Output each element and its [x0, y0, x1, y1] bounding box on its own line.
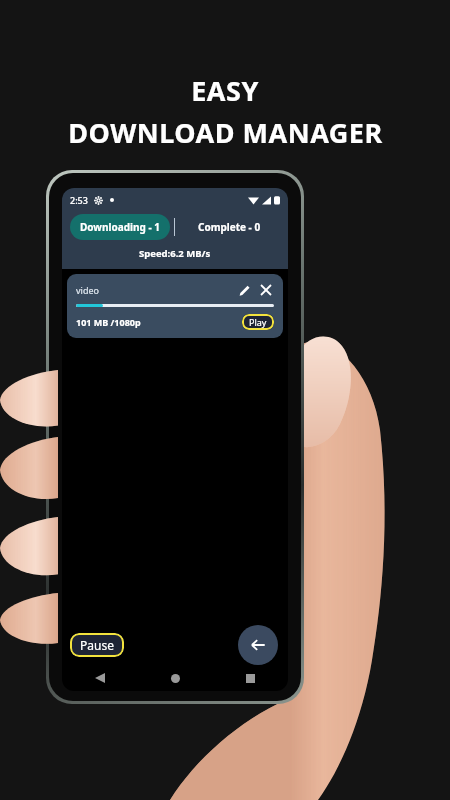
staticText: 2:53: [70, 194, 88, 206]
button[interactable]: Back: [238, 625, 278, 665]
staticText: EASY: [191, 72, 259, 109]
staticText: Pause: [80, 637, 114, 653]
staticText: 101 MB /1080p: [76, 316, 141, 328]
staticText: video: [76, 284, 99, 296]
button[interactable]: Play: [242, 314, 274, 330]
button[interactable]: Back: [62, 665, 138, 691]
staticText: Play: [249, 316, 267, 328]
button[interactable]: Edit: [236, 282, 252, 298]
staticText: Downloading - 1: [80, 220, 160, 234]
button[interactable]: Cancel download: [258, 282, 274, 298]
button[interactable]: Home: [138, 665, 213, 691]
button[interactable]: Recents: [213, 665, 288, 691]
button[interactable]: Downloading - 1: [70, 214, 170, 240]
button[interactable]: Pause: [70, 633, 124, 657]
staticText: Speed:6.2 MB/s: [139, 247, 211, 260]
staticText: DOWNLOAD MANAGER: [68, 114, 383, 151]
staticText: Complete - 0: [198, 220, 261, 234]
button[interactable]: Complete - 0: [175, 214, 284, 240]
button[interactable]: video: [67, 274, 283, 338]
